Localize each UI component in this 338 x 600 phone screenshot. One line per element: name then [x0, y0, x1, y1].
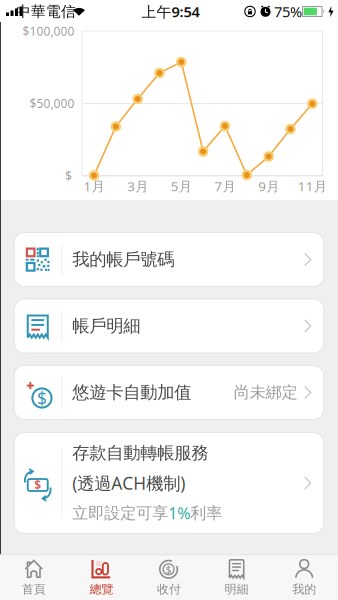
staticText: 明細	[225, 582, 249, 597]
staticText: $100,000	[22, 23, 74, 39]
staticText: 中華電信	[16, 2, 76, 20]
staticText: 7月	[214, 177, 235, 195]
staticText: 9月	[258, 177, 279, 195]
staticText: 1月	[83, 177, 104, 195]
staticText: 悠遊卡自動加值	[72, 382, 191, 403]
staticText: 1%	[168, 502, 190, 524]
staticText: 我的帳戶號碼	[72, 249, 174, 270]
staticText: 11月	[298, 177, 327, 195]
staticText: 總覽	[89, 582, 113, 597]
staticText: $50,000	[29, 95, 74, 111]
staticText: 75%	[274, 2, 302, 21]
staticText: 3月	[127, 177, 148, 195]
staticText: 5月	[171, 177, 192, 195]
staticText: 尚未綁定	[234, 383, 298, 402]
staticText: 上午9:54	[141, 2, 199, 21]
button[interactable]: $	[14, 432, 324, 533]
staticText: $	[65, 168, 72, 184]
staticText: $	[166, 562, 172, 576]
staticText: $	[37, 386, 47, 409]
staticText: $	[34, 477, 41, 493]
button[interactable]: 總覽	[68, 554, 135, 600]
button[interactable]: 我的	[270, 554, 338, 600]
staticText: 我的	[292, 582, 316, 597]
staticText: 首頁	[22, 582, 46, 597]
button[interactable]: 明細	[203, 554, 270, 600]
staticText: 存款自動轉帳服務	[72, 442, 208, 463]
staticText: 帳戶明細	[72, 315, 140, 337]
button[interactable]: 首頁	[0, 554, 68, 600]
button[interactable]: 帳戶明細	[14, 299, 324, 353]
staticText: 立即設定可享	[72, 503, 168, 523]
button[interactable]: 收付	[135, 554, 203, 600]
button[interactable]: $	[14, 365, 324, 419]
staticText: 利率	[190, 503, 222, 523]
button[interactable]: 我的帳戶號碼	[14, 232, 324, 286]
staticText: 收付	[157, 582, 181, 597]
staticText: (透過ACH機制)	[72, 471, 185, 494]
